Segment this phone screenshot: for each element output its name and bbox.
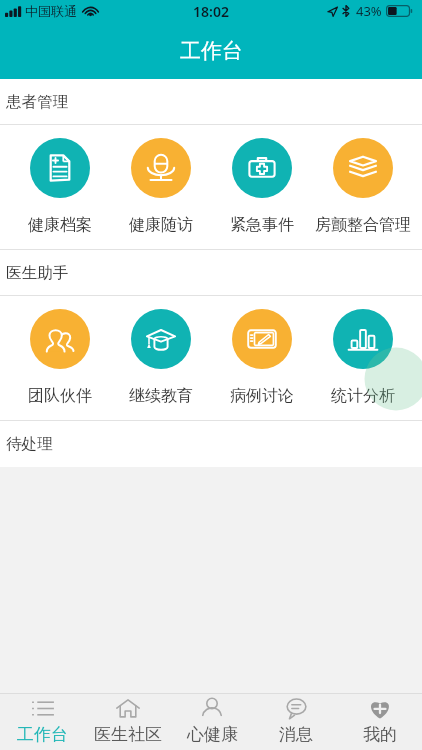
button[interactable]: 心健康 (170, 693, 254, 750)
staticText: 工作台 (180, 38, 243, 64)
staticText: 健康档案 (28, 215, 92, 235)
staticText: 团队伙伴 (28, 386, 92, 406)
button[interactable]: 健康随访 (110, 125, 211, 249)
staticText: 工作台 (17, 724, 68, 745)
button[interactable]: 病例讨论 (211, 296, 312, 420)
button[interactable]: 医生社区 (85, 693, 170, 750)
button[interactable]: 统计分析 (312, 296, 413, 420)
staticText: 房颤整合管理 (315, 215, 411, 235)
staticText: 患者管理 (6, 92, 69, 112)
button[interactable]: 消息 (254, 693, 338, 750)
staticText: 医生社区 (94, 724, 162, 745)
button[interactable]: 团队伙伴 (9, 296, 110, 420)
staticText: 18:02 (193, 2, 229, 21)
staticText: 健康随访 (129, 215, 193, 235)
staticText: 紧急事件 (230, 215, 294, 235)
staticText: 待处理 (6, 434, 53, 454)
button[interactable]: 我的 (338, 693, 422, 750)
staticText: 我的 (363, 724, 397, 745)
staticText: 继续教育 (129, 386, 193, 406)
staticText: 消息 (279, 724, 313, 745)
staticText: 统计分析 (331, 386, 395, 406)
button[interactable]: 房颤整合管理 (312, 125, 413, 249)
staticText: 心健康 (187, 724, 238, 745)
button[interactable]: 工作台 (0, 693, 85, 750)
staticText: 病例讨论 (230, 386, 294, 406)
button[interactable]: 继续教育 (110, 296, 211, 420)
button[interactable]: 健康档案 (9, 125, 110, 249)
staticText: 医生助手 (6, 263, 69, 283)
staticText: 43% (356, 2, 382, 20)
staticText: 中国联通 (25, 3, 77, 19)
button[interactable]: 紧急事件 (211, 125, 312, 249)
